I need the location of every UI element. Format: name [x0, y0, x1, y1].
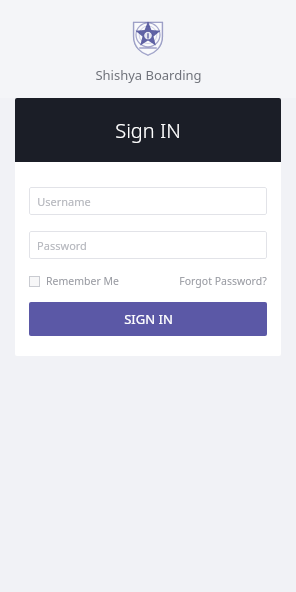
staticText: Forgot Password? [179, 274, 267, 288]
button[interactable]: Password [29, 231, 267, 259]
other: Shishya Boarding logo [128, 16, 168, 56]
button[interactable]: SIGN IN [29, 302, 267, 336]
staticText: Password [37, 238, 87, 253]
button[interactable]: Forgot Password? [179, 272, 267, 290]
staticText: Sign IN [115, 117, 181, 144]
staticText: Remember Me [46, 274, 119, 288]
staticText: SIGN IN [124, 310, 173, 328]
staticText: Username [37, 194, 91, 209]
button[interactable]: Remember Me [29, 272, 119, 290]
staticText: Shishya Boarding [95, 66, 202, 84]
button[interactable]: Username [29, 187, 267, 215]
